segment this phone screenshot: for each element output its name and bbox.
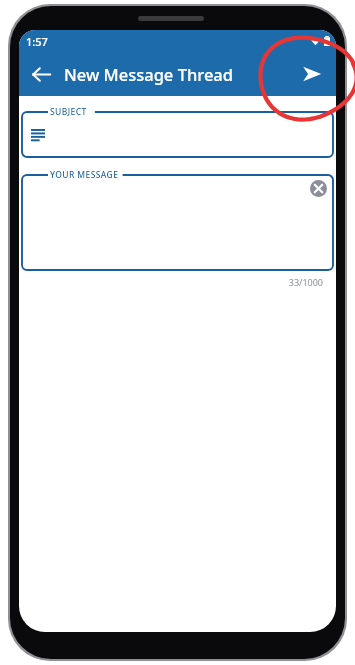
button[interactable]: Back	[21, 54, 61, 94]
staticText: YOUR MESSAGE	[50, 169, 119, 181]
staticText: SUBJECT	[50, 106, 87, 118]
button[interactable]: Clear message	[310, 180, 327, 197]
staticText: New Message Thread	[64, 63, 234, 85]
button[interactable]: Send	[292, 54, 332, 94]
staticText: 33/1000	[20, 276, 323, 288]
staticText: 1:57	[26, 34, 48, 49]
